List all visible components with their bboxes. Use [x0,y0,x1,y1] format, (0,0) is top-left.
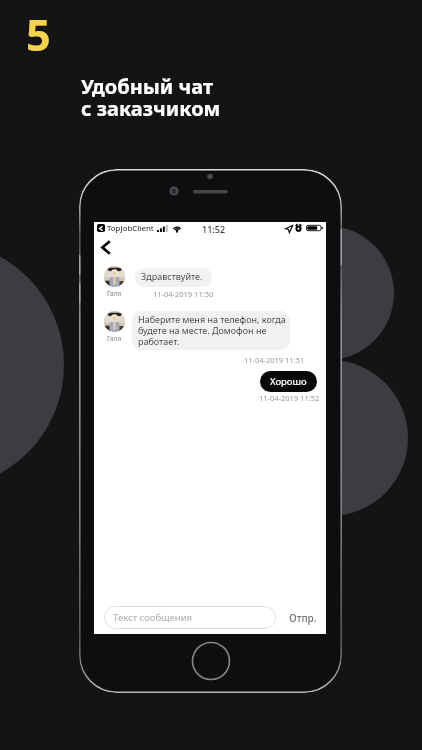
staticText: Текст сообщения [113,611,193,624]
staticText: Наберите меня на телефон, когда будете н… [138,313,287,347]
staticText: Галя [107,334,122,343]
staticText: Галя [107,289,122,298]
button[interactable]: Отпр. [285,607,321,628]
staticText: 11-04-2019 11:52 [259,393,320,403]
staticText: 11:52 [202,223,226,235]
staticText: Удобный чат с заказчиком [81,73,221,122]
button[interactable]: Наберите меня на телефон, когда будете н… [132,311,290,350]
staticText: TopJobClient [107,223,154,234]
staticText: 5 [26,5,51,64]
button[interactable]: Back [93,234,119,260]
staticText: Здравствуйте. [141,270,203,282]
button[interactable]: Хорошо [260,371,317,392]
staticText: Хорошо [270,375,307,388]
staticText: 11-04-2019 11:50 [153,289,214,299]
button[interactable]: Текст сообщения [104,606,276,629]
button[interactable]: Здравствуйте. [135,268,212,287]
staticText: Отпр. [289,611,317,625]
staticText: 11-04-2019 11:51 [244,355,305,365]
